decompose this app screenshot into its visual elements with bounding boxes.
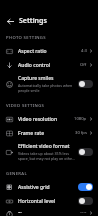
staticText: Frame rate [18,130,45,137]
staticText: Assistive grid [18,184,50,191]
staticText: Capture smiles [18,75,54,82]
staticText: VIDEO SETTINGS [6,103,45,109]
staticText: Off [80,211,87,213]
button[interactable]: Horizontal level [0,194,98,208]
button[interactable]: Assistive grid [0,180,98,194]
staticText: Automatically take photos when people sm… [18,83,75,93]
button[interactable]: Back [5,16,15,26]
staticText: Timer [18,211,32,213]
button[interactable]: Capture smiles [0,72,98,96]
button[interactable]: Aspect ratio [0,44,98,58]
staticText: Aspect ratio [18,48,47,55]
staticText: 1080p [74,116,87,122]
staticText: Efficient video format [18,143,70,150]
staticText: GENERAL [6,171,28,177]
staticText: 4:3 [81,48,87,54]
staticText: PHOTO SETTINGS [6,35,46,41]
staticText: Off [80,62,87,68]
button[interactable]: Audio control [0,58,98,72]
staticText: 30 fps [75,130,87,136]
button[interactable]: Video resolution [0,112,98,126]
staticText: Videos take up about 35% less space, but… [18,151,75,161]
staticText: Video resolution [18,116,58,123]
button[interactable]: Timer [0,208,98,216]
staticText: Horizontal level [18,198,56,205]
staticText: Settings [19,16,47,26]
button[interactable]: Frame rate [0,126,98,140]
staticText: Audio control [18,62,51,69]
button[interactable]: Efficient video format [0,140,98,164]
